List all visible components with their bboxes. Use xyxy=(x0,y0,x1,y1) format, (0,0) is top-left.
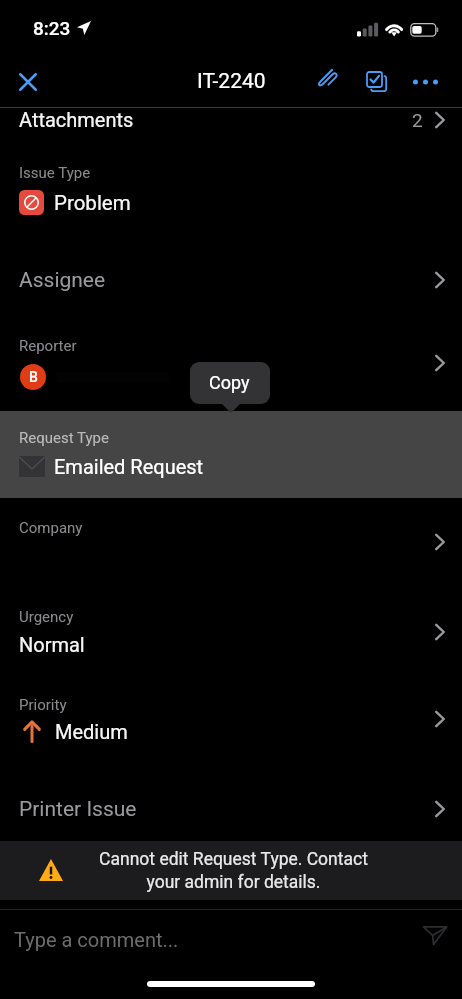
staticText: 2 xyxy=(412,109,423,131)
staticText: Reporter xyxy=(19,337,77,355)
button[interactable]: Assignee xyxy=(0,247,462,313)
button[interactable]: More options xyxy=(403,56,448,107)
staticText: Emailed Request xyxy=(54,455,204,478)
staticText: Problem xyxy=(54,191,131,215)
button[interactable]: Priority xyxy=(0,679,462,759)
staticText: Printer Issue xyxy=(19,797,137,822)
button[interactable]: Close xyxy=(5,56,50,107)
button[interactable]: Printer Issue xyxy=(0,778,462,840)
staticText: Attachments xyxy=(19,108,134,131)
button[interactable]: Attach file xyxy=(306,56,351,107)
button[interactable]: Tasks xyxy=(354,56,399,107)
staticText: Company xyxy=(19,519,83,537)
staticText: Assignee xyxy=(19,268,106,293)
button[interactable]: Urgency xyxy=(0,592,462,672)
staticText: Urgency xyxy=(19,608,74,626)
staticText: Issue Type xyxy=(19,164,91,182)
button[interactable]: Company xyxy=(0,505,462,585)
staticText: IT-2240 xyxy=(197,69,266,94)
button[interactable]: Send xyxy=(418,918,452,952)
staticText: Request Type xyxy=(19,429,109,447)
button[interactable]: Issue Type xyxy=(0,148,462,228)
button[interactable]: Attachments xyxy=(0,101,462,138)
staticText: Cannot edit Request Type. Contact your a… xyxy=(91,849,376,892)
button[interactable]: Type a comment... xyxy=(0,910,462,972)
staticText: Priority xyxy=(19,696,67,714)
staticText: Copy xyxy=(209,372,250,393)
staticText: Normal xyxy=(19,633,85,656)
staticText: Type a comment... xyxy=(14,928,179,951)
staticText: B xyxy=(29,369,38,385)
button[interactable]: Reporter xyxy=(0,320,462,406)
button[interactable]: Request Type xyxy=(0,411,462,498)
staticText: Medium xyxy=(55,720,128,743)
staticText: 8:23 xyxy=(33,17,71,39)
